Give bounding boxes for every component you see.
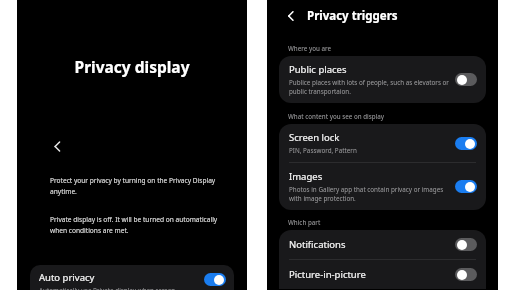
staticText: PIN, Password, Pattern (289, 146, 357, 155)
staticText: Public places (289, 63, 347, 76)
button[interactable]: Back (50, 139, 65, 154)
button[interactable]: Toggle on (455, 137, 477, 150)
staticText: Privacy triggers (307, 8, 398, 24)
staticText: Publice places with lots of people, such… (289, 78, 449, 96)
staticText: Which part (288, 218, 321, 226)
staticText: Picture-in-picture (289, 268, 366, 281)
staticText: Photos in Gallery app that contain priva… (289, 185, 449, 203)
staticText: Notifications (289, 238, 346, 251)
button[interactable]: Picture-in-picture (279, 260, 486, 289)
button[interactable]: Notifications (279, 230, 486, 259)
button[interactable]: Public places (279, 56, 486, 103)
staticText: Automatically use Private display when s… (39, 286, 176, 290)
button[interactable]: Toggle off (455, 238, 477, 251)
staticText: Where you are (288, 44, 332, 52)
button[interactable]: Toggle on (204, 273, 226, 286)
button[interactable]: Toggle on (455, 180, 477, 193)
button[interactable]: Toggle off (455, 73, 477, 86)
button[interactable]: Screen lock (279, 124, 486, 162)
staticText: Screen lock (289, 131, 340, 144)
staticText: Private display is off. It will be turne… (50, 215, 229, 235)
button[interactable]: Back (284, 9, 298, 23)
staticText: What content you see on display (288, 112, 385, 120)
button[interactable]: Auto privacy (30, 265, 234, 290)
button[interactable]: Toggle off (455, 268, 477, 281)
staticText: Images (289, 170, 323, 183)
button[interactable]: Images (279, 163, 486, 210)
staticText: Auto privacy (39, 271, 95, 284)
staticText: Privacy display (17, 56, 247, 77)
staticText: Protect your privacy by turning on the P… (50, 176, 229, 196)
